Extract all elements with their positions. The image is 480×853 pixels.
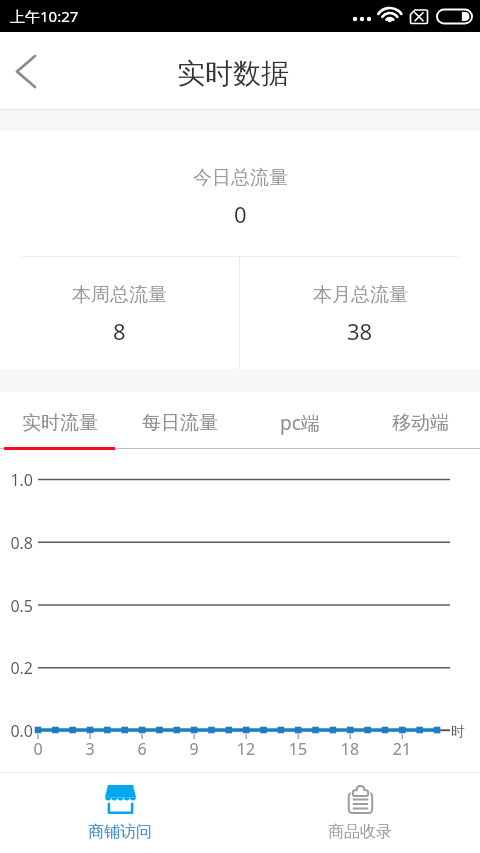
staticText: 6 [122,738,162,760]
button[interactable]: 每日流量 [120,392,240,447]
staticText: 18 [330,738,370,760]
staticText: 实时流量 [22,411,98,435]
staticText: 0.0 [0,720,33,742]
staticText: 商铺访问 [88,822,152,842]
button[interactable]: pc端 [240,392,360,447]
staticText: 21 [382,738,422,760]
staticText: 0.8 [0,532,33,554]
staticText: 今日总流量 [193,166,288,190]
staticText: 实时数据 [177,56,289,91]
staticText: pc端 [280,410,320,436]
staticText: 商品收录 [328,822,392,842]
staticText: 38 [347,316,373,346]
staticText: 时 [451,723,465,741]
staticText: 3 [70,738,110,760]
staticText: 0 [18,738,58,760]
staticText: 12 [226,738,266,760]
staticText: 15 [278,738,318,760]
staticText: 1.0 [0,469,33,491]
staticText: 上午10:27 [10,6,79,26]
button[interactable]: Back [0,45,52,97]
staticText: 每日流量 [142,411,218,435]
staticText: 本月总流量 [313,283,408,307]
staticText: 0.2 [0,657,33,679]
staticText: 8 [113,316,126,346]
staticText: 9 [174,738,214,760]
staticText: 0 [234,199,247,229]
button[interactable]: 实时流量 [0,392,120,447]
button[interactable]: 商铺访问 [0,773,240,853]
button[interactable]: 移动端 [360,392,480,447]
staticText: 本周总流量 [72,283,167,307]
staticText: 移动端 [392,411,449,435]
staticText: 0.5 [0,595,33,617]
button[interactable]: 商品收录 [240,773,480,853]
